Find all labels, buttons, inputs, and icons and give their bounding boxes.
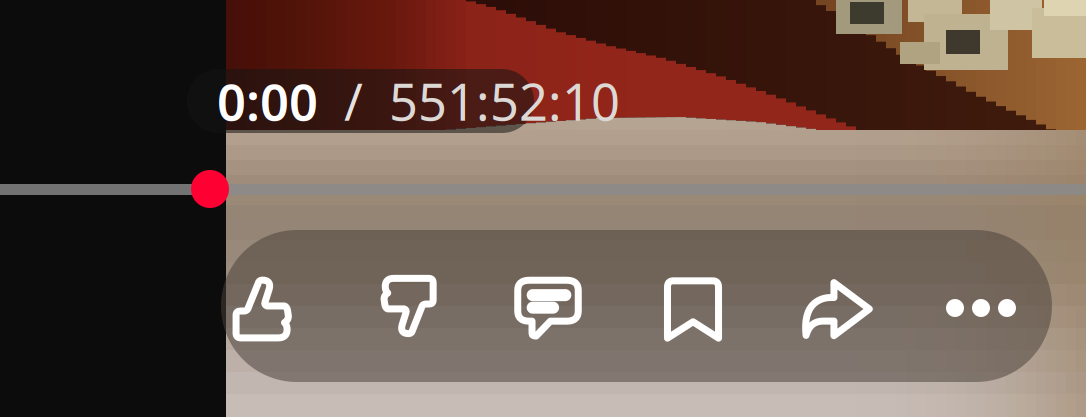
staticText: / <box>318 67 389 135</box>
button[interactable]: Comments <box>482 230 614 382</box>
button[interactable]: Save <box>627 233 759 385</box>
button[interactable]: Like <box>199 233 331 385</box>
staticText: 0:00 <box>217 67 318 135</box>
button[interactable]: Share <box>771 233 903 385</box>
button[interactable]: More options <box>915 232 1047 384</box>
staticText: 551:52:10 <box>389 67 620 135</box>
button[interactable]: Dislike <box>340 230 472 382</box>
